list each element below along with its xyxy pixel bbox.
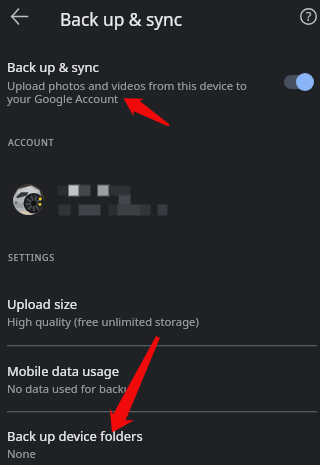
button[interactable] [0, 279, 320, 345]
staticText: Back up & sync [60, 8, 183, 32]
button[interactable] [0, 53, 320, 109]
button[interactable] [0, 174, 320, 226]
staticText: No data used for backup [7, 381, 138, 396]
button[interactable]: Back [7, 4, 32, 29]
staticText: None [7, 446, 36, 461]
button[interactable]: Help [296, 4, 320, 29]
staticText: Mobile data usage [7, 362, 120, 380]
staticText: SETTINGS [8, 251, 55, 263]
button[interactable]: Back up & sync toggle [280, 68, 318, 96]
button[interactable] [0, 412, 320, 465]
button[interactable] [0, 346, 320, 411]
staticText: High quality (free unlimited storage) [7, 314, 199, 329]
staticText: Upload size [7, 295, 78, 313]
staticText: ? [306, 8, 312, 25]
staticText: ACCOUNT [8, 136, 55, 148]
staticText: Back up & sync [7, 58, 99, 76]
staticText: Back up device folders [7, 427, 143, 445]
staticText: Upload photos and videos from this devic… [7, 78, 247, 106]
